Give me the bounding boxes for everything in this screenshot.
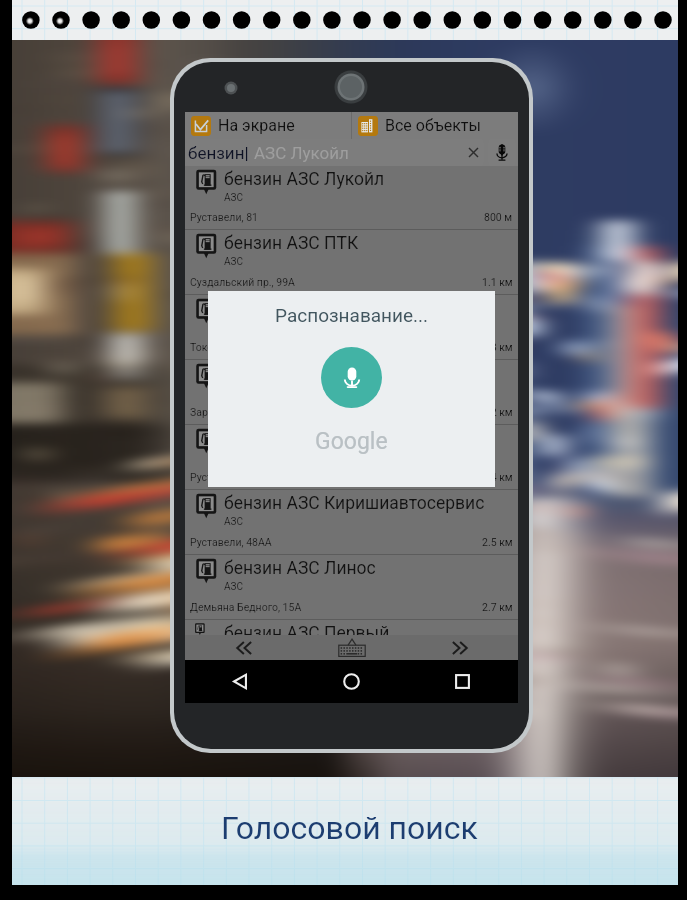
- staticText: 2.5 км: [482, 536, 513, 548]
- button[interactable]: бензин АЗС ПТК: [185, 230, 518, 295]
- staticText: Демьяна Бедного, 15А: [190, 601, 302, 613]
- staticText: Суздальский пр., 99А: [190, 276, 295, 288]
- staticText: Голосовой поиск: [221, 809, 478, 847]
- button[interactable]: бензин АЗС Киришиавтосервис: [185, 490, 518, 555]
- staticText: бензин АЗС Фаэтон: [224, 363, 384, 384]
- staticText: бензин АЗС Киришиавтосервис: [224, 493, 485, 514]
- button[interactable]: Back: [185, 660, 296, 703]
- button[interactable]: Next results: [407, 635, 518, 660]
- button[interactable]: На экране: [185, 112, 351, 139]
- staticText: АЗС: [224, 516, 243, 528]
- staticText: АЗС: [224, 256, 243, 268]
- staticText: бензин АЗС Первый: [224, 623, 390, 635]
- button[interactable]: Все объекты: [352, 112, 518, 139]
- staticText: 2.2 км: [482, 406, 513, 418]
- staticText: Руставели, 48АА: [190, 536, 272, 548]
- staticText: АЗС Лукойл: [254, 143, 349, 163]
- staticText: 1.8 км: [482, 341, 513, 353]
- staticText: 2.7 км: [482, 601, 513, 613]
- staticText: АЗС: [224, 192, 243, 204]
- staticText: Заречная, 3: [190, 406, 248, 418]
- staticText: АЗС: [224, 581, 243, 593]
- button[interactable]: Microphone: [321, 347, 382, 408]
- staticText: 2.4 км: [482, 471, 513, 483]
- staticText: Руставели, 81: [190, 211, 258, 223]
- staticText: бензин АЗС ПТК: [224, 233, 359, 254]
- staticText: бензин АЗС Линос: [224, 558, 376, 579]
- button[interactable]: бензин АЗС Лукойл: [185, 166, 518, 230]
- button[interactable]: бензин АЗС Шелл: [185, 425, 518, 490]
- button[interactable]: Voice search: [488, 139, 516, 166]
- button[interactable]: Home: [296, 660, 407, 703]
- button[interactable]: бензин АЗС Нефто: [185, 295, 518, 360]
- staticText: Google: [315, 428, 388, 455]
- staticText: Распознавание...: [275, 304, 429, 326]
- staticText: Токсовское ш., 10: [190, 341, 278, 353]
- staticText: На экране: [218, 116, 295, 135]
- button[interactable]: бензин АЗС Линос: [185, 555, 518, 620]
- button[interactable]: бензин АЗС Первый: [185, 620, 518, 635]
- staticText: 800 м: [484, 211, 513, 223]
- staticText: бензин АЗС Лукойл: [224, 169, 385, 190]
- button[interactable]: Recent apps: [407, 660, 518, 703]
- button[interactable]: Keyboard: [296, 635, 407, 660]
- staticText: бензин|: [188, 143, 249, 163]
- button[interactable]: Previous results: [185, 635, 296, 660]
- staticText: Все объекты: [385, 116, 481, 135]
- button[interactable]: бензин АЗС Фаэтон: [185, 360, 518, 425]
- staticText: 1.1 км: [482, 276, 513, 288]
- staticText: Руставели, 26: [190, 471, 258, 483]
- staticText: бензин АЗС Нефто: [224, 298, 376, 319]
- staticText: бензин АЗС Шелл: [224, 428, 370, 449]
- button[interactable]: бензин|: [186, 139, 484, 166]
